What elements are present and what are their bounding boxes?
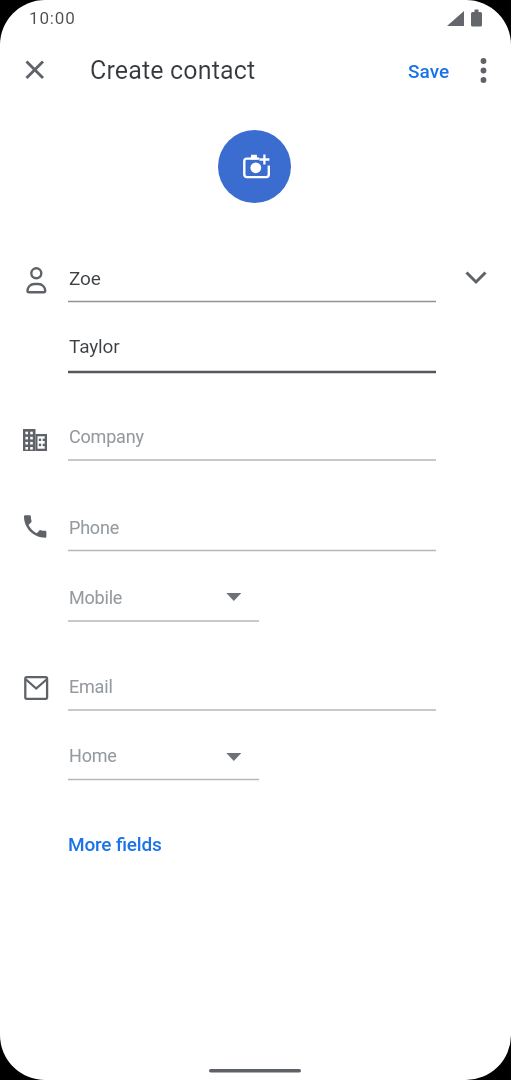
button[interactable]: Save xyxy=(396,50,456,86)
button[interactable] xyxy=(60,328,444,376)
staticText: Mobile xyxy=(69,587,123,608)
button[interactable] xyxy=(218,130,291,203)
button[interactable] xyxy=(60,506,444,554)
staticText: Zoe xyxy=(69,267,101,289)
button[interactable] xyxy=(60,576,266,624)
staticText: Company xyxy=(69,426,144,447)
staticText: More fields xyxy=(68,833,162,855)
staticText: Email xyxy=(69,676,113,697)
button[interactable] xyxy=(11,46,59,94)
button[interactable] xyxy=(460,46,508,94)
staticText: Create contact xyxy=(90,56,256,85)
staticText: Phone xyxy=(69,517,120,538)
staticText: 10:00 xyxy=(29,8,76,28)
staticText: Home xyxy=(69,745,117,766)
button[interactable] xyxy=(60,666,444,714)
staticText: Taylor xyxy=(69,335,120,357)
button[interactable]: More fields xyxy=(56,824,176,864)
button[interactable] xyxy=(60,738,266,786)
staticText: Save xyxy=(408,60,450,82)
button[interactable] xyxy=(60,418,444,466)
button[interactable] xyxy=(60,258,444,306)
